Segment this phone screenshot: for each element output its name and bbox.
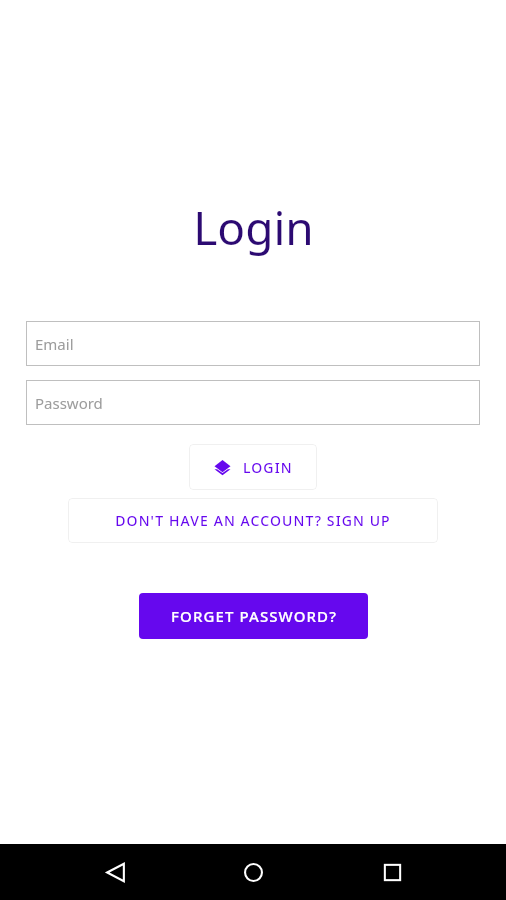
- staticText: Password: [35, 393, 103, 413]
- staticText: DON'T HAVE AN ACCOUNT? SIGN UP: [115, 511, 391, 530]
- staticText: Email: [35, 334, 74, 354]
- button[interactable]: FORGET PASSWORD?: [139, 593, 368, 639]
- button[interactable]: DON'T HAVE AN ACCOUNT? SIGN UP: [68, 498, 438, 543]
- staticText: FORGET PASSWORD?: [171, 606, 337, 626]
- button[interactable]: Home: [229, 848, 277, 896]
- staticText: LOGIN: [243, 458, 293, 477]
- button[interactable]: Password: [26, 380, 480, 425]
- button[interactable]: Recent apps: [368, 848, 416, 896]
- button[interactable]: LOGIN: [189, 444, 317, 490]
- button[interactable]: Email: [26, 321, 480, 366]
- staticText: Login: [193, 196, 314, 259]
- button[interactable]: Back: [91, 848, 139, 896]
